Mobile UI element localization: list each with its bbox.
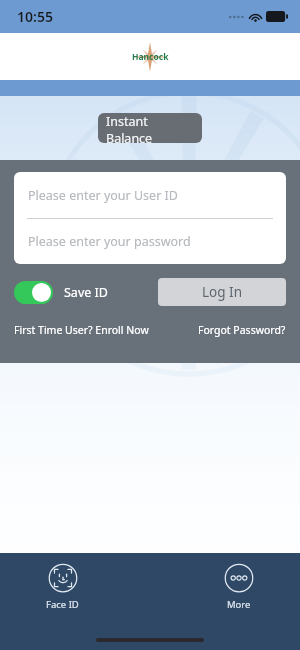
staticText: More	[227, 598, 251, 611]
staticText: Please enter your User ID	[28, 187, 178, 204]
button[interactable]: Forgot Password?	[198, 323, 286, 337]
staticText: Face ID	[46, 598, 79, 611]
staticText: Please enter your password	[28, 233, 191, 250]
staticText: Hancock	[132, 51, 169, 63]
button[interactable]: Please enter your User ID	[14, 172, 286, 218]
button[interactable]: Log In	[158, 278, 286, 306]
button[interactable]: More	[218, 561, 260, 613]
staticText: Instant Balance	[106, 113, 194, 143]
button[interactable]: First Time User? Enroll Now	[14, 323, 149, 337]
staticText: Forgot Password?	[198, 323, 286, 337]
staticText: Log In	[202, 283, 242, 301]
button[interactable]: Save ID	[14, 281, 112, 304]
staticText: Save ID	[64, 284, 108, 301]
staticText: 10:55	[17, 7, 53, 26]
button[interactable]: Instant Balance	[98, 113, 202, 143]
button[interactable]: Face ID	[40, 561, 85, 613]
button[interactable]: Please enter your password	[14, 219, 286, 264]
staticText: First Time User? Enroll Now	[14, 323, 149, 337]
